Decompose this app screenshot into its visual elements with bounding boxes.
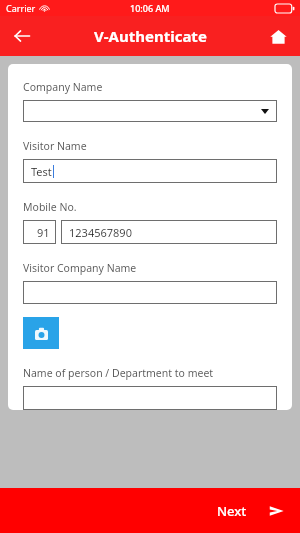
staticText: Test [31, 164, 52, 179]
button[interactable]: Next [0, 488, 300, 533]
staticText: V-Authenticate [94, 26, 207, 46]
button[interactable] [23, 281, 277, 304]
staticText: 10:06 AM [130, 2, 170, 14]
staticText: Company Name [23, 80, 103, 94]
button[interactable]: 91 [23, 220, 56, 244]
staticText: Visitor Company Name [23, 261, 137, 275]
button[interactable]: Take photo [23, 317, 59, 349]
button[interactable] [23, 386, 277, 410]
staticText: 91 [37, 225, 50, 240]
button[interactable]: Test [23, 159, 277, 183]
staticText: Carrier [6, 2, 36, 14]
button[interactable]: 1234567890 [61, 220, 277, 244]
staticText: 1234567890 [69, 225, 132, 240]
staticText: Name of person / Department to meet [23, 366, 214, 380]
staticText: Visitor Name [23, 139, 87, 153]
button[interactable]: Home [256, 16, 300, 56]
staticText: Mobile No. [23, 200, 77, 214]
button[interactable] [23, 100, 277, 122]
button[interactable]: Back [0, 16, 44, 56]
staticText: Next [217, 502, 247, 520]
